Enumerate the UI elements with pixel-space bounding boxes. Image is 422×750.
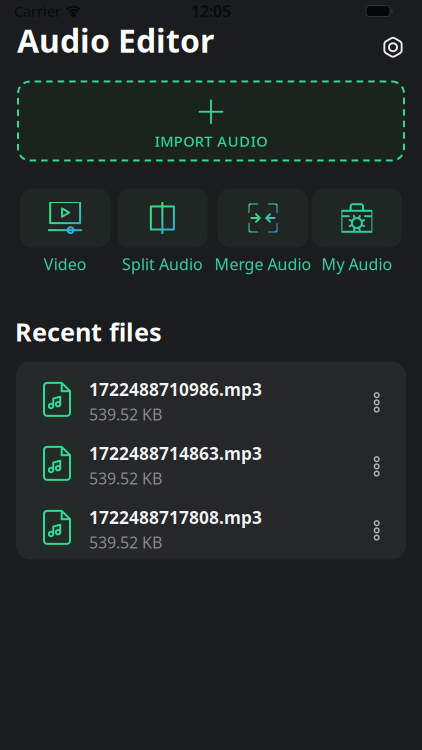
staticText: 1722488710986.mp3 (89, 378, 262, 401)
button[interactable]: My Audio (312, 188, 402, 275)
button[interactable]: Settings (383, 36, 403, 58)
staticText: Recent files (15, 315, 162, 348)
button[interactable]: 1722488710986.mp3 (16, 367, 406, 431)
button[interactable]: 1722488717808.mp3 (16, 495, 406, 559)
button[interactable]: IMPORT AUDIO (17, 80, 405, 161)
button[interactable]: Video (20, 188, 110, 275)
staticText: 1722488717808.mp3 (89, 506, 262, 529)
staticText: My Audio (321, 253, 392, 275)
button[interactable]: More options (374, 521, 379, 540)
staticText: 12:05 (191, 0, 231, 22)
button[interactable]: Split Audio (117, 188, 207, 275)
staticText: Video (44, 253, 87, 275)
staticText: Merge Audio (214, 253, 311, 275)
staticText: Carrier (14, 1, 61, 21)
staticText: 539.52 KB (89, 468, 162, 489)
staticText: IMPORT AUDIO (155, 131, 267, 151)
staticText: Audio Editor (17, 19, 214, 61)
button[interactable]: More options (374, 393, 379, 412)
button[interactable]: 1722488714863.mp3 (16, 431, 406, 495)
staticText: 539.52 KB (89, 404, 162, 425)
staticText: 539.52 KB (89, 532, 162, 553)
staticText: Split Audio (122, 253, 203, 275)
button[interactable]: More options (374, 457, 379, 476)
button[interactable]: Merge Audio (214, 188, 305, 275)
staticText: 1722488714863.mp3 (89, 442, 262, 465)
